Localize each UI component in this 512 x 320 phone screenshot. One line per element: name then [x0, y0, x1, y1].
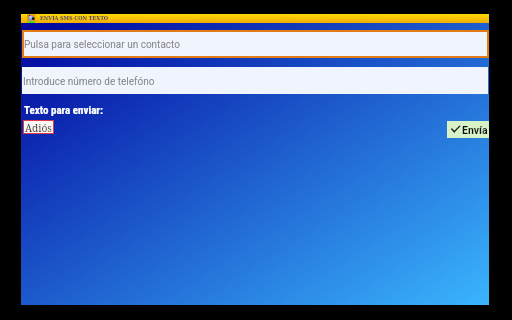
staticText: Envía [462, 124, 488, 136]
staticText: Pulsa para seleccionar un contacto [24, 39, 180, 51]
staticText: Texto para enviar: [24, 104, 103, 117]
staticText: Introduce número de telefóno [23, 76, 155, 88]
other: App icon [27, 14, 36, 23]
staticText: ENVÍA SMS CON TEXTO [40, 15, 109, 21]
button[interactable]: Envía [447, 121, 489, 138]
staticText: Adiós [25, 121, 52, 133]
button[interactable]: Introduce número de telefóno [22, 67, 488, 94]
button[interactable]: Adiós [24, 121, 53, 133]
button[interactable]: Pulsa para seleccionar un contacto [22, 30, 489, 58]
